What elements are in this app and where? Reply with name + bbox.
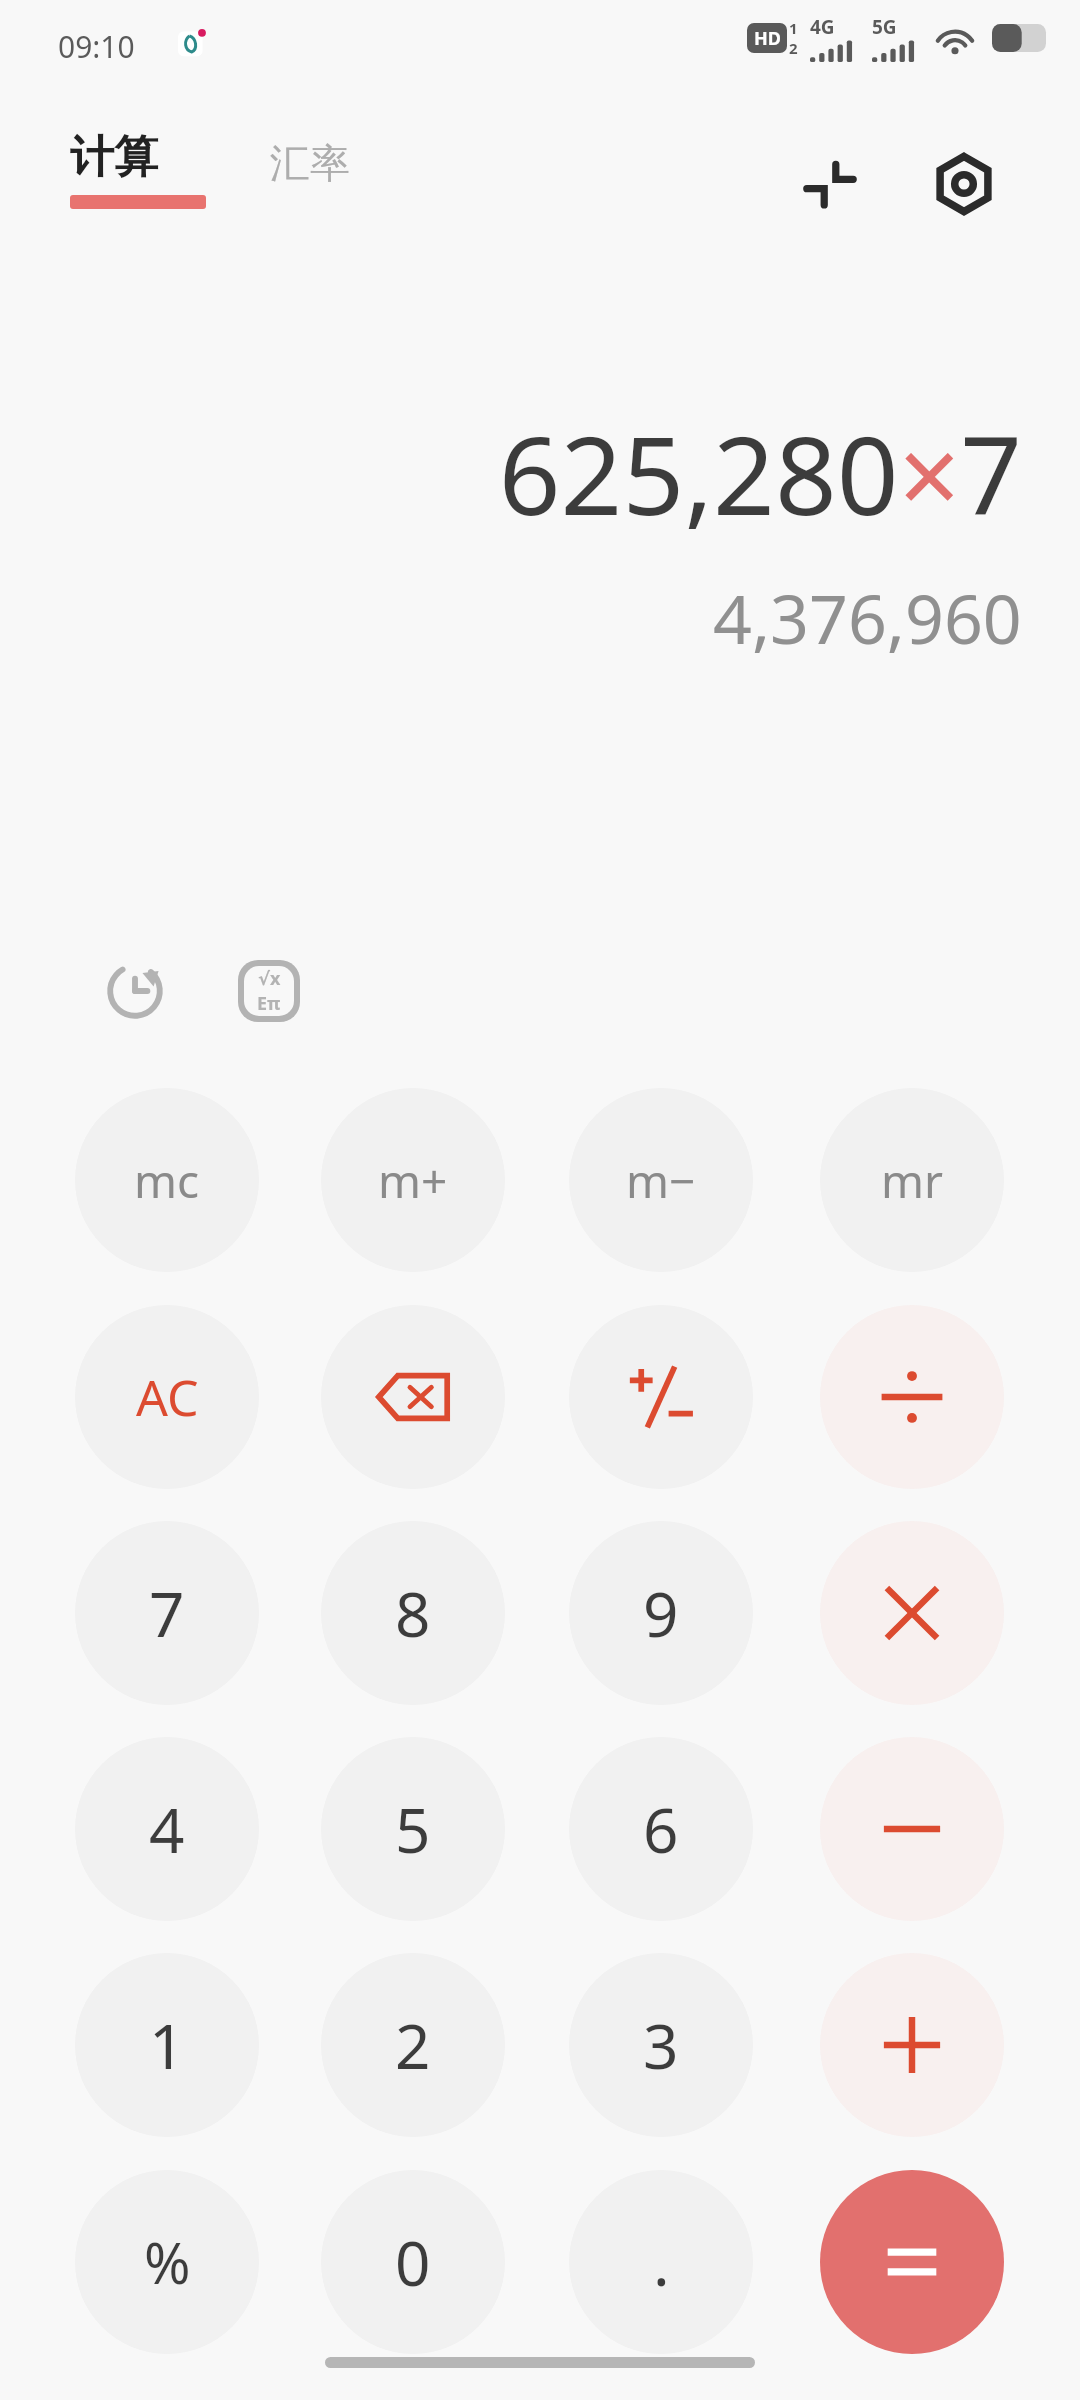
staticText: 5 <box>395 1787 431 1871</box>
staticText: 3 <box>643 2003 679 2087</box>
button[interactable]: Fullscreen <box>782 136 878 232</box>
button[interactable]: m− <box>569 1088 753 1272</box>
staticText: 2 <box>395 2003 431 2087</box>
staticText: m+ <box>378 1149 448 1212</box>
staticText: HD <box>754 26 781 51</box>
staticText: 2 <box>789 38 798 58</box>
staticText: % <box>144 2224 191 2300</box>
button[interactable]: 4 <box>75 1737 259 1921</box>
button[interactable]: 计算 <box>66 126 210 213</box>
button[interactable]: Backspace <box>321 1305 505 1489</box>
button[interactable]: 汇率 <box>264 132 356 194</box>
staticText: 625,280×7 <box>498 400 1022 547</box>
staticText: 7 <box>149 1571 185 1655</box>
button[interactable]: 0 <box>321 2170 505 2354</box>
staticText: . <box>653 2220 670 2304</box>
staticText: 09:10 <box>58 26 135 67</box>
button[interactable]: 9 <box>569 1521 753 1705</box>
staticText: mc <box>134 1149 200 1212</box>
button[interactable]: 8 <box>321 1521 505 1705</box>
staticText: 8 <box>395 1571 431 1655</box>
staticText: 9 <box>643 1571 679 1655</box>
button[interactable]: 1 <box>75 1953 259 2137</box>
button[interactable]: . <box>569 2170 753 2354</box>
staticText: 1 <box>789 18 798 38</box>
staticText: 4 <box>149 1787 185 1871</box>
button[interactable]: History <box>86 942 184 1040</box>
button[interactable]: Multiply <box>820 1521 1004 1705</box>
staticText: 计算 <box>70 130 158 185</box>
button[interactable]: Divide <box>820 1305 1004 1489</box>
staticText: 5G <box>872 14 897 40</box>
staticText: 6 <box>643 1787 679 1871</box>
button[interactable]: 5 <box>321 1737 505 1921</box>
staticText: √x <box>258 966 281 991</box>
staticText: 4,376,960 <box>713 571 1022 664</box>
button[interactable]: mr <box>820 1088 1004 1272</box>
staticText: mr <box>881 1149 944 1212</box>
button[interactable]: Plus <box>820 1953 1004 2137</box>
button[interactable]: 3 <box>569 1953 753 2137</box>
staticText: 汇率 <box>270 138 350 188</box>
staticText: 1 <box>149 2003 185 2087</box>
button[interactable]: 2 <box>321 1953 505 2137</box>
button[interactable]: % <box>75 2170 259 2354</box>
staticText: m− <box>626 1149 696 1212</box>
button[interactable]: mc <box>75 1088 259 1272</box>
button[interactable]: 7 <box>75 1521 259 1705</box>
button[interactable]: Settings <box>916 136 1012 232</box>
staticText: 4G <box>810 14 835 40</box>
button[interactable]: Plus minus <box>569 1305 753 1489</box>
button[interactable]: Minus <box>820 1737 1004 1921</box>
staticText: Eπ <box>257 991 281 1016</box>
button[interactable]: Equals <box>820 2170 1004 2354</box>
button[interactable]: m+ <box>321 1088 505 1272</box>
staticText: 0 <box>395 2220 431 2304</box>
button[interactable]: AC <box>75 1305 259 1489</box>
staticText: AC <box>136 1363 199 1431</box>
button[interactable]: 6 <box>569 1737 753 1921</box>
button[interactable]: Scientific mode <box>220 942 318 1040</box>
